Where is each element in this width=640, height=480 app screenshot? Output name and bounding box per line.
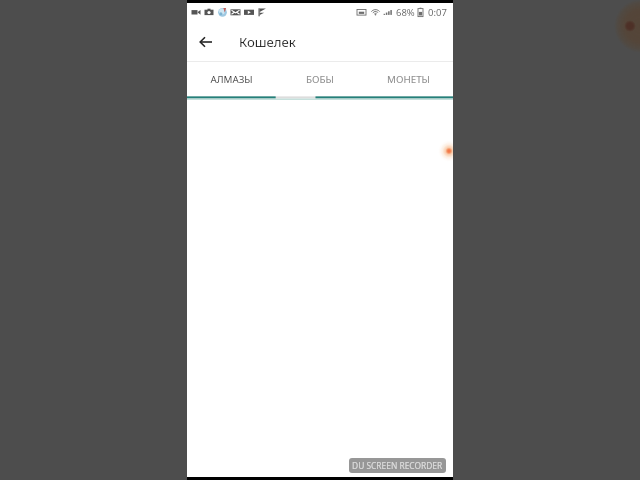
staticText: БОБЫ (306, 73, 334, 86)
staticText: Кошелек (239, 33, 296, 51)
button[interactable]: БОБЫ (275, 62, 364, 97)
staticText: 68% (396, 6, 415, 19)
button[interactable]: Back (195, 31, 217, 53)
staticText: МОНЕТЫ (387, 73, 430, 86)
staticText: 0:07 (428, 6, 447, 19)
staticText: DU SCREEN RECORDER (352, 460, 443, 471)
staticText: АЛМАЗЫ (210, 73, 253, 86)
button[interactable]: АЛМАЗЫ (187, 62, 275, 97)
button[interactable]: МОНЕТЫ (364, 62, 453, 97)
